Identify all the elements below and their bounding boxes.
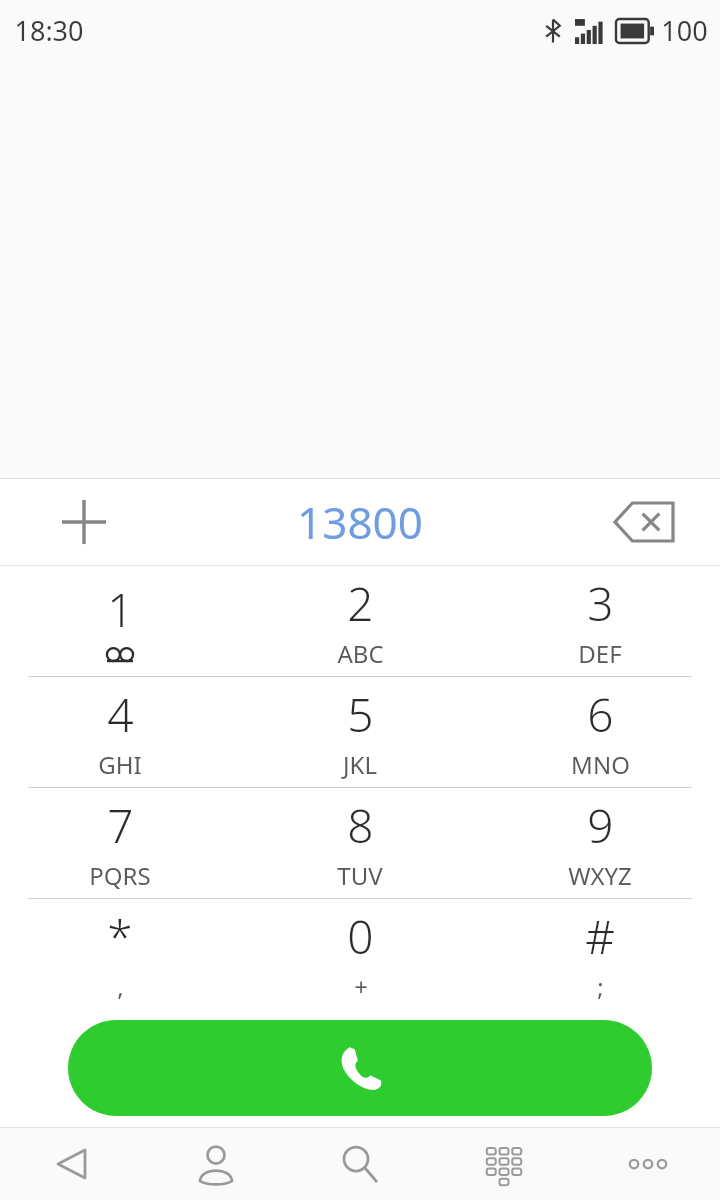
button[interactable]: 6 bbox=[480, 677, 720, 787]
staticText: PQRS bbox=[89, 859, 151, 892]
button[interactable]: Search bbox=[288, 1128, 432, 1200]
button[interactable]: Backspace bbox=[608, 486, 680, 558]
staticText: DEF bbox=[578, 637, 622, 670]
staticText: 100 bbox=[661, 12, 708, 49]
staticText: 3 bbox=[587, 572, 614, 635]
button[interactable]: 2 bbox=[240, 566, 480, 676]
button[interactable]: 7 bbox=[0, 788, 240, 898]
button[interactable]: Add contact bbox=[52, 490, 116, 554]
button[interactable]: 4 bbox=[0, 677, 240, 787]
staticText: JKL bbox=[343, 748, 377, 781]
staticText: 8 bbox=[347, 794, 374, 857]
staticText: , bbox=[117, 970, 124, 1003]
staticText: GHI bbox=[98, 748, 142, 781]
staticText: ; bbox=[597, 970, 604, 1003]
staticText: 6 bbox=[587, 683, 614, 746]
button[interactable]: 0 bbox=[240, 899, 480, 1009]
staticText: 18:30 bbox=[14, 12, 84, 49]
staticText: 9 bbox=[587, 794, 614, 857]
staticText: WXYZ bbox=[568, 859, 632, 892]
button[interactable]: # bbox=[480, 899, 720, 1009]
button[interactable]: Call bbox=[68, 1020, 652, 1116]
staticText: # bbox=[585, 905, 615, 968]
button[interactable]: 3 bbox=[480, 566, 720, 676]
button[interactable]: 8 bbox=[240, 788, 480, 898]
button[interactable]: 1 bbox=[0, 566, 240, 676]
staticText: TUV bbox=[337, 859, 383, 892]
button[interactable]: More options bbox=[576, 1128, 720, 1200]
staticText: 1 bbox=[107, 578, 134, 641]
staticText: 13800 bbox=[297, 492, 423, 552]
button[interactable]: 5 bbox=[240, 677, 480, 787]
staticText: 2 bbox=[347, 572, 374, 635]
staticText: 7 bbox=[107, 794, 134, 857]
staticText: 5 bbox=[347, 683, 374, 746]
staticText: ABC bbox=[337, 637, 384, 670]
staticText: * bbox=[107, 905, 133, 968]
button[interactable]: 9 bbox=[480, 788, 720, 898]
staticText: MNO bbox=[571, 748, 630, 781]
button[interactable]: Dialpad bbox=[432, 1128, 576, 1200]
staticText: 4 bbox=[107, 683, 134, 746]
staticText: 0 bbox=[347, 905, 374, 968]
button[interactable]: Contacts bbox=[144, 1128, 288, 1200]
button[interactable]: * bbox=[0, 899, 240, 1009]
button[interactable]: Back bbox=[0, 1128, 144, 1200]
staticText: + bbox=[354, 970, 368, 1003]
